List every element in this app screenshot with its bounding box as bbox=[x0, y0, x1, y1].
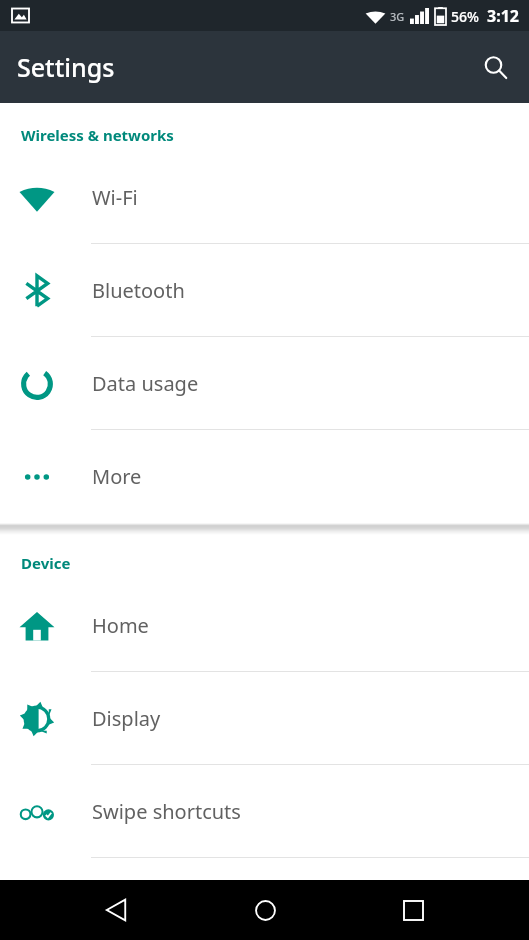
staticText: 3G bbox=[390, 9, 405, 24]
button[interactable]: Display bbox=[0, 672, 529, 765]
staticText: Settings bbox=[17, 50, 115, 84]
staticText: Device bbox=[21, 553, 71, 573]
button[interactable]: Back bbox=[83, 880, 149, 940]
staticText: Swipe shortcuts bbox=[92, 798, 241, 825]
button[interactable]: Home bbox=[0, 579, 529, 672]
staticText: Wi-Fi bbox=[92, 184, 138, 211]
button[interactable]: More bbox=[0, 430, 529, 523]
staticText: More bbox=[92, 463, 142, 490]
button[interactable]: Recent apps bbox=[380, 880, 446, 940]
staticText: Display bbox=[92, 705, 161, 732]
staticText: 3:12 bbox=[487, 5, 519, 27]
button[interactable]: Swipe shortcuts bbox=[0, 765, 529, 858]
staticText: 56% bbox=[451, 7, 479, 26]
button[interactable]: Bluetooth bbox=[0, 244, 529, 337]
staticText: Bluetooth bbox=[92, 277, 185, 304]
staticText: Wireless & networks bbox=[21, 125, 174, 145]
staticText: Home bbox=[92, 612, 149, 639]
button[interactable]: Home bbox=[232, 880, 298, 940]
button[interactable]: Search bbox=[469, 41, 521, 93]
button[interactable]: Wi-Fi bbox=[0, 151, 529, 244]
button[interactable]: Data usage bbox=[0, 337, 529, 430]
staticText: Data usage bbox=[92, 370, 199, 397]
